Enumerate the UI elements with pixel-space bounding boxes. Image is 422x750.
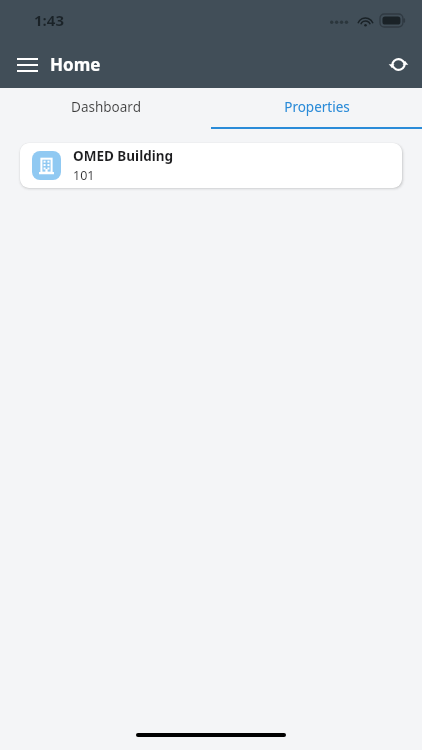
button[interactable]: Properties <box>211 88 422 129</box>
staticText: OMED Building <box>73 147 174 165</box>
staticText: 101 <box>73 167 95 184</box>
button[interactable]: Refresh <box>375 45 422 84</box>
staticText: Properties <box>284 98 350 116</box>
staticText: 1:43 <box>34 10 64 30</box>
button[interactable]: Open navigation menu <box>0 47 113 82</box>
other: Open navigation menu <box>16 54 38 76</box>
staticText: Home <box>50 53 101 76</box>
button[interactable]: Dashboard <box>0 88 211 129</box>
button[interactable]: OMED Building <box>20 143 402 188</box>
staticText: Dashboard <box>71 98 141 116</box>
